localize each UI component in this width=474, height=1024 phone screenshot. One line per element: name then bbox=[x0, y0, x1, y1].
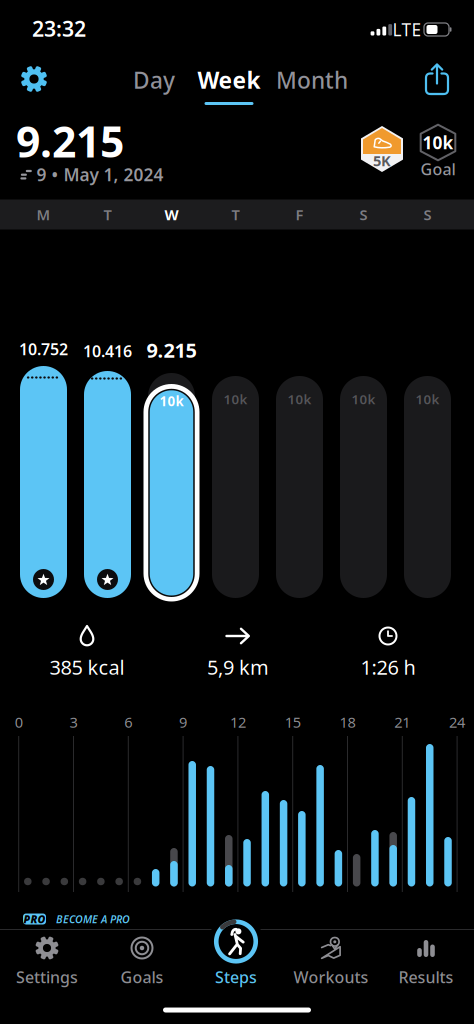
staticText: 10k bbox=[422, 131, 453, 154]
staticText: 18 bbox=[339, 712, 355, 732]
staticText: 21 bbox=[394, 712, 410, 732]
staticText: 24 bbox=[449, 712, 465, 732]
staticText: Steps bbox=[215, 966, 257, 988]
button[interactable]: Week bbox=[197, 65, 260, 95]
button[interactable]: Tuesday 10.416 steps bbox=[84, 371, 131, 598]
staticText: Goals bbox=[120, 966, 163, 988]
staticText: LTE bbox=[392, 18, 421, 41]
staticText: 1:26 h bbox=[360, 654, 415, 680]
staticText: 10k bbox=[415, 390, 439, 408]
staticText: 0 bbox=[15, 712, 23, 732]
staticText: S bbox=[359, 205, 367, 224]
button[interactable]: Steps tab, selected bbox=[196, 930, 276, 990]
button[interactable]: Month bbox=[276, 65, 348, 95]
staticText: Results bbox=[398, 966, 453, 988]
button[interactable]: Share bbox=[422, 62, 452, 96]
staticText: W bbox=[164, 205, 178, 224]
staticText: 10k bbox=[159, 392, 183, 410]
button[interactable]: Settings tab bbox=[7, 930, 87, 990]
staticText: 385 kcal bbox=[49, 654, 124, 680]
staticText: 10k bbox=[351, 390, 375, 408]
staticText: 9.215 bbox=[146, 337, 196, 363]
button[interactable]: Wednesday 9.215 steps, selected bbox=[141, 370, 201, 605]
staticText: 5K bbox=[373, 151, 391, 170]
staticText: Settings bbox=[16, 966, 78, 988]
staticText: PRO bbox=[23, 912, 45, 926]
staticText: M bbox=[36, 205, 50, 224]
staticText: 6 bbox=[124, 712, 132, 732]
staticText: 9 • May 1, 2024 bbox=[36, 163, 163, 186]
staticText: Month bbox=[276, 65, 348, 95]
staticText: Week bbox=[197, 65, 260, 95]
staticText: 12 bbox=[230, 712, 246, 732]
button[interactable]: Day 4 bbox=[212, 376, 259, 598]
button[interactable]: Day 6 bbox=[340, 376, 387, 598]
staticText: Day bbox=[133, 65, 175, 95]
button[interactable]: Day bbox=[133, 65, 175, 95]
button[interactable]: Workouts tab bbox=[291, 930, 371, 990]
staticText: BECOME A PRO bbox=[56, 912, 130, 926]
staticText: T bbox=[103, 205, 111, 224]
staticText: 9.215 bbox=[16, 113, 124, 169]
staticText: Goal bbox=[420, 158, 455, 180]
staticText: T bbox=[231, 205, 239, 224]
staticText: 10k bbox=[287, 390, 311, 408]
button[interactable]: Results tab bbox=[386, 930, 466, 990]
staticText: S bbox=[423, 205, 431, 224]
staticText: 10.752 bbox=[19, 338, 68, 360]
staticText: 3 bbox=[69, 712, 77, 732]
staticText: 10.416 bbox=[83, 340, 132, 362]
button[interactable]: Day 7 bbox=[404, 376, 451, 598]
staticText: 9 bbox=[179, 712, 187, 732]
staticText: 10k bbox=[223, 390, 247, 408]
staticText: 15 bbox=[285, 712, 301, 732]
button[interactable]: Goals tab bbox=[102, 930, 182, 990]
staticText: Workouts bbox=[293, 966, 368, 988]
staticText: 23:32 bbox=[32, 14, 86, 43]
staticText: 5,9 km bbox=[207, 654, 269, 680]
button[interactable]: PRO bbox=[23, 913, 143, 927]
button[interactable]: Day 5 bbox=[276, 376, 323, 598]
button[interactable]: Settings bbox=[20, 65, 47, 92]
staticText: F bbox=[295, 205, 303, 224]
button[interactable]: Monday 10.752 steps bbox=[20, 366, 67, 598]
